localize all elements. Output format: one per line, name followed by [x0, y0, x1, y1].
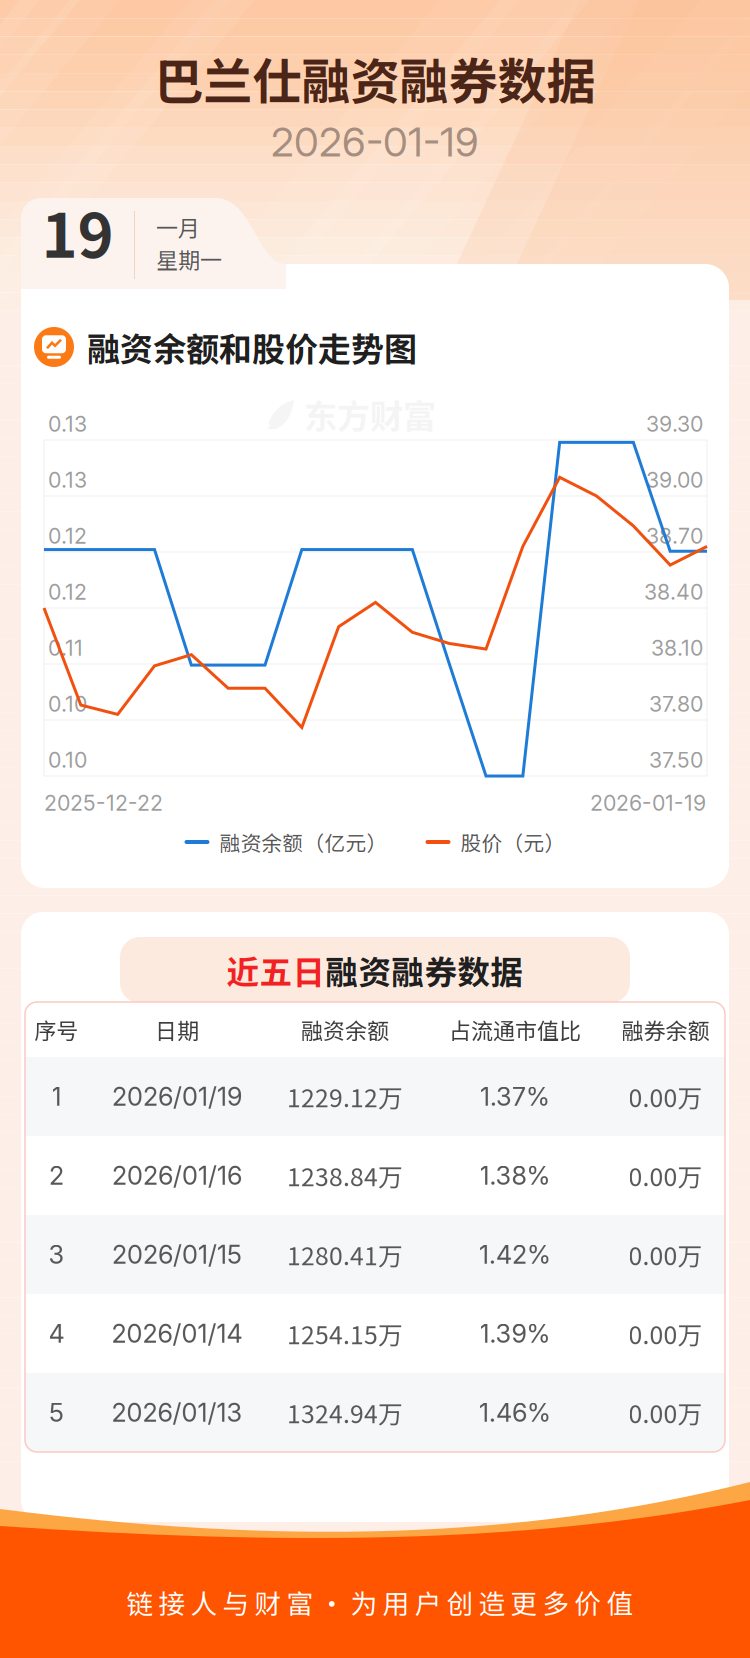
staticText: 1238.84万	[287, 1158, 403, 1193]
staticText: 0.12	[48, 579, 87, 605]
staticText: 2	[49, 1160, 64, 1191]
staticText: 日期	[155, 1014, 199, 1045]
staticText: 2026/01/13	[111, 1397, 242, 1428]
staticText: 巴兰仕融资融券数据	[154, 42, 595, 113]
staticText: 融资余额	[301, 1014, 389, 1045]
staticText: 2026/01/14	[111, 1318, 242, 1349]
staticText: 链 接 人 与 财 富 · 为 用 户 创 造 更 多 价 值	[126, 1583, 633, 1621]
staticText: 39.30	[646, 411, 703, 437]
staticText: 19	[41, 187, 113, 275]
staticText: 1280.41万	[287, 1237, 403, 1272]
staticText: 2026/01/16	[112, 1160, 242, 1191]
staticText: 1	[51, 1081, 61, 1112]
staticText: 0.10	[48, 747, 87, 773]
staticText: 0.13	[48, 467, 87, 493]
staticText: 1254.15万	[287, 1316, 403, 1351]
staticText: 星期一	[156, 243, 222, 275]
staticText: 股价（元）	[460, 827, 565, 857]
staticText: 37.50	[649, 747, 703, 773]
staticText: 2026-01-19	[590, 790, 706, 816]
staticText: 2026/01/15	[112, 1239, 242, 1270]
staticText: 融资余额和股价走势图	[87, 323, 417, 371]
staticText: 1.38%	[479, 1160, 550, 1191]
staticText: 39.00	[646, 467, 703, 493]
staticText: 0.11	[48, 635, 83, 661]
staticText: 0.12	[48, 523, 87, 549]
staticText: 1324.94万	[287, 1395, 403, 1430]
staticText: 1.37%	[480, 1081, 550, 1112]
staticText: 3	[48, 1239, 64, 1270]
staticText: 占流通市值比	[449, 1014, 581, 1045]
staticText: 0.00万	[628, 1158, 702, 1193]
staticText: 2026/01/19	[112, 1081, 242, 1112]
staticText: 融资余额（亿元）	[219, 827, 387, 857]
staticText: 38.70	[646, 523, 703, 549]
staticText: 1229.12万	[287, 1079, 403, 1114]
staticText: 38.10	[651, 635, 703, 661]
staticText: 0.00万	[628, 1316, 702, 1351]
staticText: 融券余额	[621, 1014, 709, 1045]
staticText: 东方财富	[304, 390, 436, 438]
staticText: 1.39%	[479, 1318, 550, 1349]
staticText: 2026-01-19	[271, 118, 479, 166]
staticText: 5	[49, 1397, 64, 1428]
staticText: 37.80	[649, 691, 703, 717]
staticText: 近五日	[226, 946, 325, 993]
staticText: 一月	[156, 211, 200, 243]
staticText: 1.46%	[479, 1397, 551, 1428]
staticText: 融资融券数据	[325, 946, 523, 993]
staticText: 0.13	[48, 411, 87, 437]
staticText: 0.00万	[628, 1395, 702, 1430]
staticText: 序号	[34, 1014, 78, 1045]
staticText: 2025-12-22	[44, 790, 163, 816]
staticText: 38.40	[644, 579, 703, 605]
staticText: 4	[48, 1318, 64, 1349]
staticText: 0.10	[48, 691, 87, 717]
staticText: 0.00万	[628, 1079, 702, 1114]
staticText: 0.00万	[628, 1237, 702, 1272]
staticText: 1.42%	[479, 1239, 551, 1270]
